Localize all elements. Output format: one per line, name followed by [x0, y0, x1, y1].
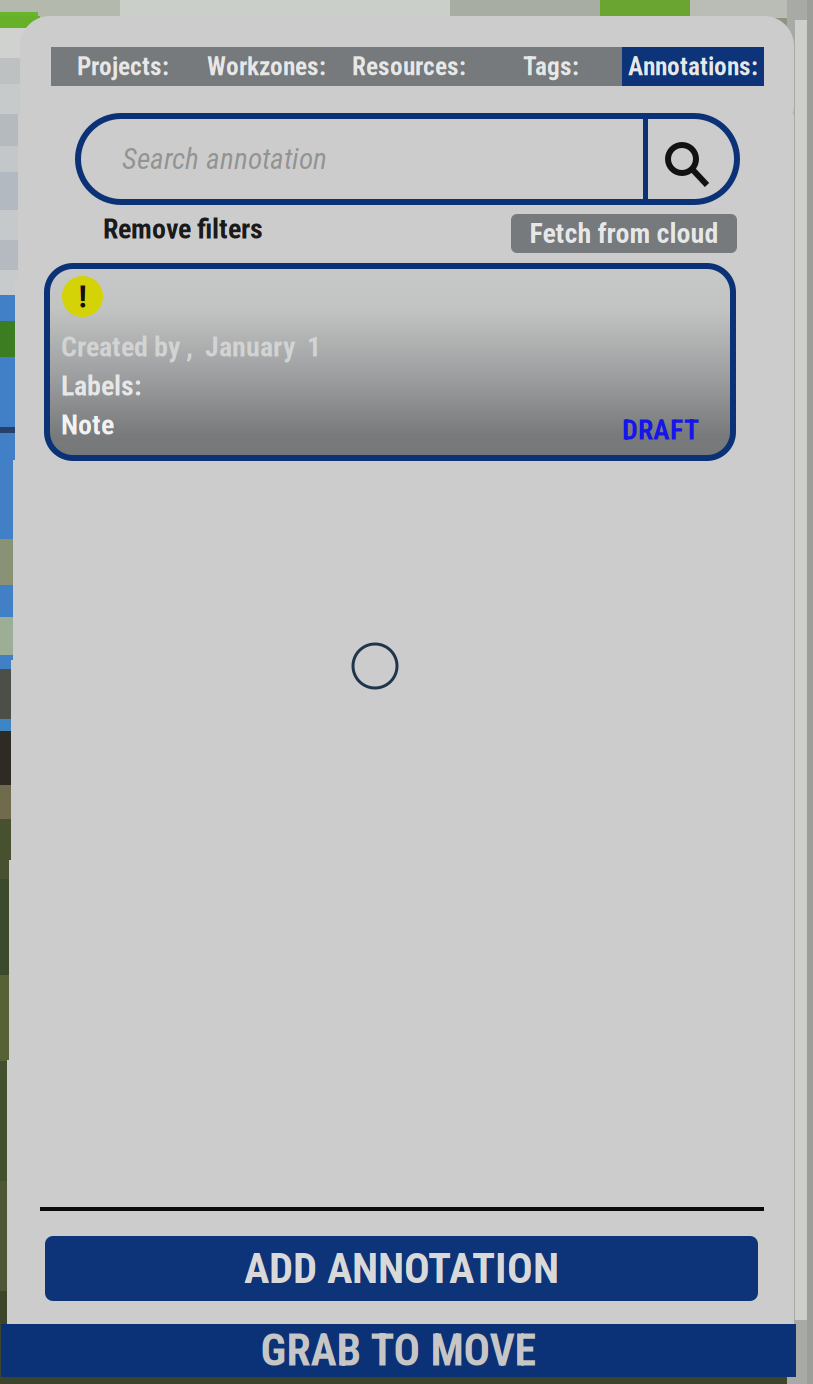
staticText: Remove filters — [103, 213, 263, 245]
button[interactable]: Resources: — [338, 47, 480, 86]
button[interactable]: Search — [649, 121, 737, 203]
staticText: Created by , January 1 — [61, 331, 321, 363]
staticText: Tags: — [523, 52, 579, 81]
button[interactable]: Remove filters — [103, 210, 273, 248]
button[interactable]: Annotations: — [622, 47, 764, 86]
staticText: Labels: — [61, 370, 142, 402]
button[interactable]: Projects: — [51, 47, 195, 86]
staticText: Fetch from cloud — [529, 217, 718, 250]
staticText: DRAFT — [622, 414, 699, 446]
staticText: ! — [78, 278, 86, 315]
button[interactable]: Tags: — [480, 47, 622, 86]
staticText: GRAB TO MOVE — [260, 1325, 536, 1376]
button[interactable]: ! — [47, 266, 733, 458]
button[interactable]: Workzones: — [195, 47, 338, 86]
button[interactable]: GRAB TO MOVE — [1, 1324, 796, 1377]
staticText: ADD ANNOTATION — [244, 1243, 559, 1293]
staticText: Workzones: — [207, 52, 326, 81]
staticText: Resources: — [352, 52, 466, 81]
staticText: Annotations: — [628, 52, 758, 81]
button[interactable]: Fetch from cloud — [511, 214, 737, 253]
staticText: Note — [61, 409, 114, 441]
button[interactable]: Search annotation — [78, 119, 642, 199]
button[interactable]: ADD ANNOTATION — [45, 1236, 758, 1301]
staticText: Search annotation — [122, 142, 327, 176]
staticText: Projects: — [77, 52, 169, 81]
